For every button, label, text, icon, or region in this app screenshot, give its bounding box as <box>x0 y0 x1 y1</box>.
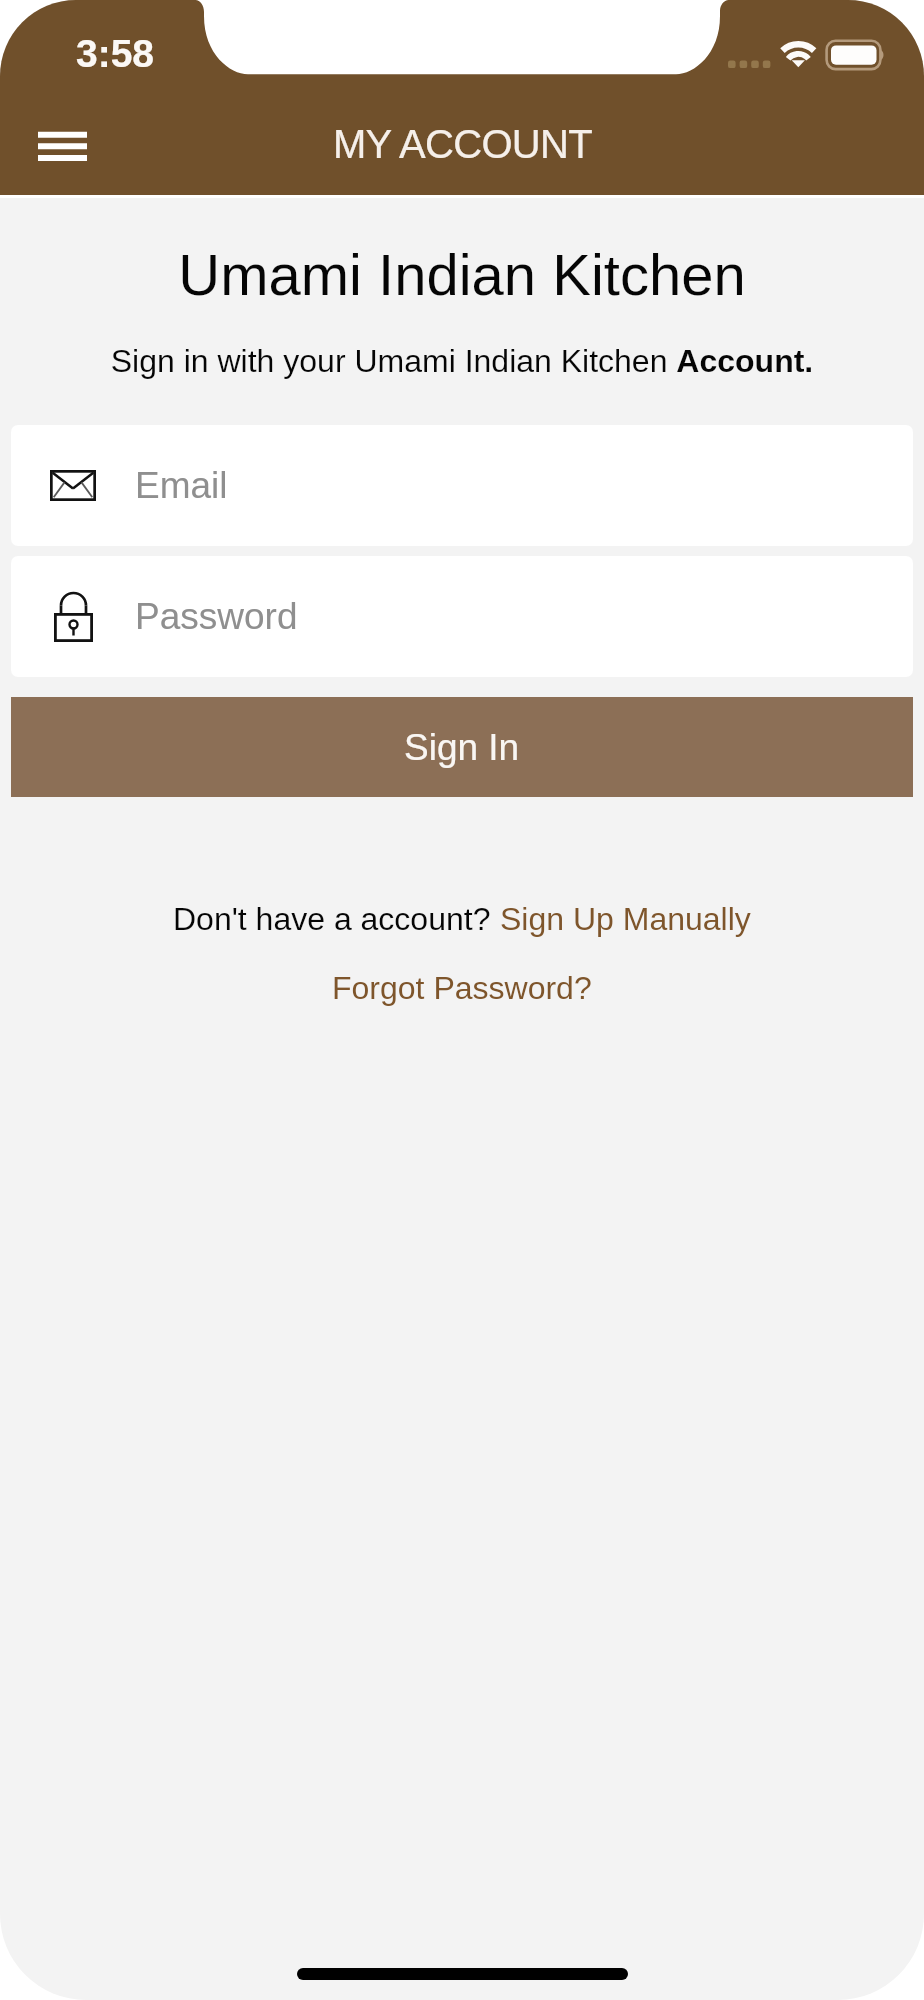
staticText: Umami Indian Kitchen <box>0 242 924 307</box>
staticText: Password <box>135 596 298 637</box>
staticText: Sign Up Manually <box>500 901 751 937</box>
button[interactable]: Open navigation menu <box>16 103 109 189</box>
staticText: Sign In <box>404 727 520 768</box>
staticText: Sign in with your Umami Indian Kitchen A… <box>0 343 924 379</box>
button[interactable]: Email <box>11 425 913 546</box>
button[interactable]: Password <box>11 556 913 677</box>
button[interactable]: Sign Up Manually <box>500 901 751 937</box>
staticText: Email <box>135 465 228 506</box>
staticText: Forgot Password? <box>332 970 592 1006</box>
staticText: Don't have a account? <box>173 901 500 937</box>
staticText: 3:58 <box>76 32 155 76</box>
staticText: MY ACCOUNT <box>333 122 592 167</box>
button[interactable]: Sign In <box>11 697 913 797</box>
button[interactable]: Forgot Password? <box>332 970 592 1006</box>
